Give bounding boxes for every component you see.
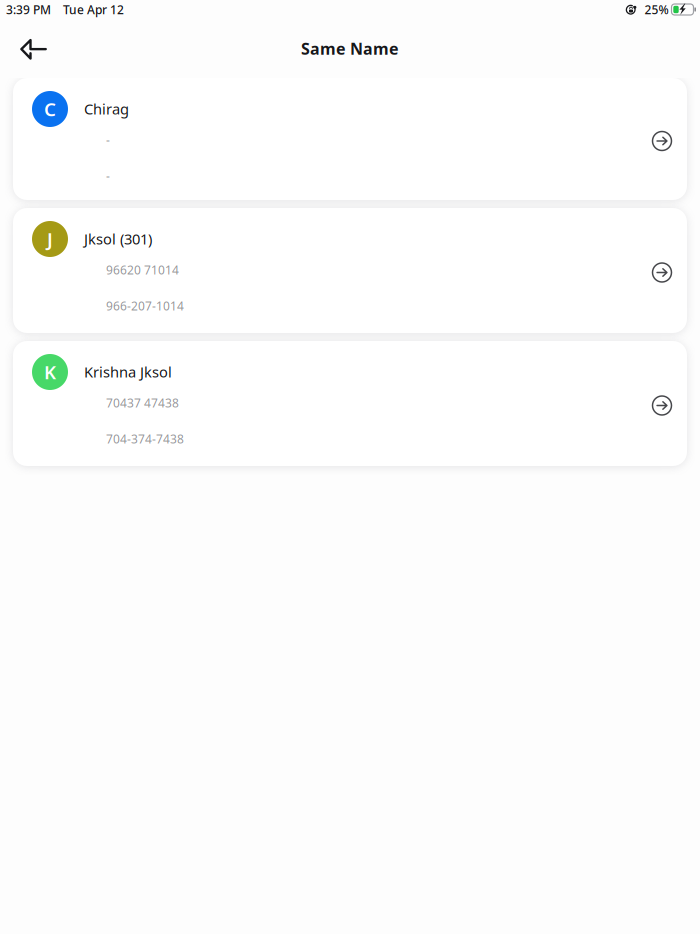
staticText: Chirag (84, 99, 129, 118)
staticText: J (47, 227, 53, 251)
staticText: Same Name (301, 38, 399, 59)
button[interactable]: J (13, 208, 687, 333)
button[interactable]: K (13, 341, 687, 466)
staticText: 704-374-7438 (106, 431, 184, 447)
button[interactable]: C (13, 78, 687, 200)
staticText: Tue Apr 12 (63, 1, 124, 17)
staticText: 3:39 PM (6, 1, 51, 17)
staticText: Krishna Jksol (84, 362, 172, 381)
staticText: K (44, 360, 56, 384)
staticText: 966-207-1014 (106, 298, 184, 314)
staticText: C (44, 97, 56, 121)
button[interactable]: Back (0, 25, 59, 71)
staticText: 25% (644, 1, 668, 17)
staticText: - (106, 132, 110, 148)
staticText: 70437 47438 (106, 395, 179, 411)
staticText: 96620 71014 (106, 262, 179, 278)
staticText: Jksol (301) (84, 229, 152, 248)
staticText: - (106, 168, 110, 184)
